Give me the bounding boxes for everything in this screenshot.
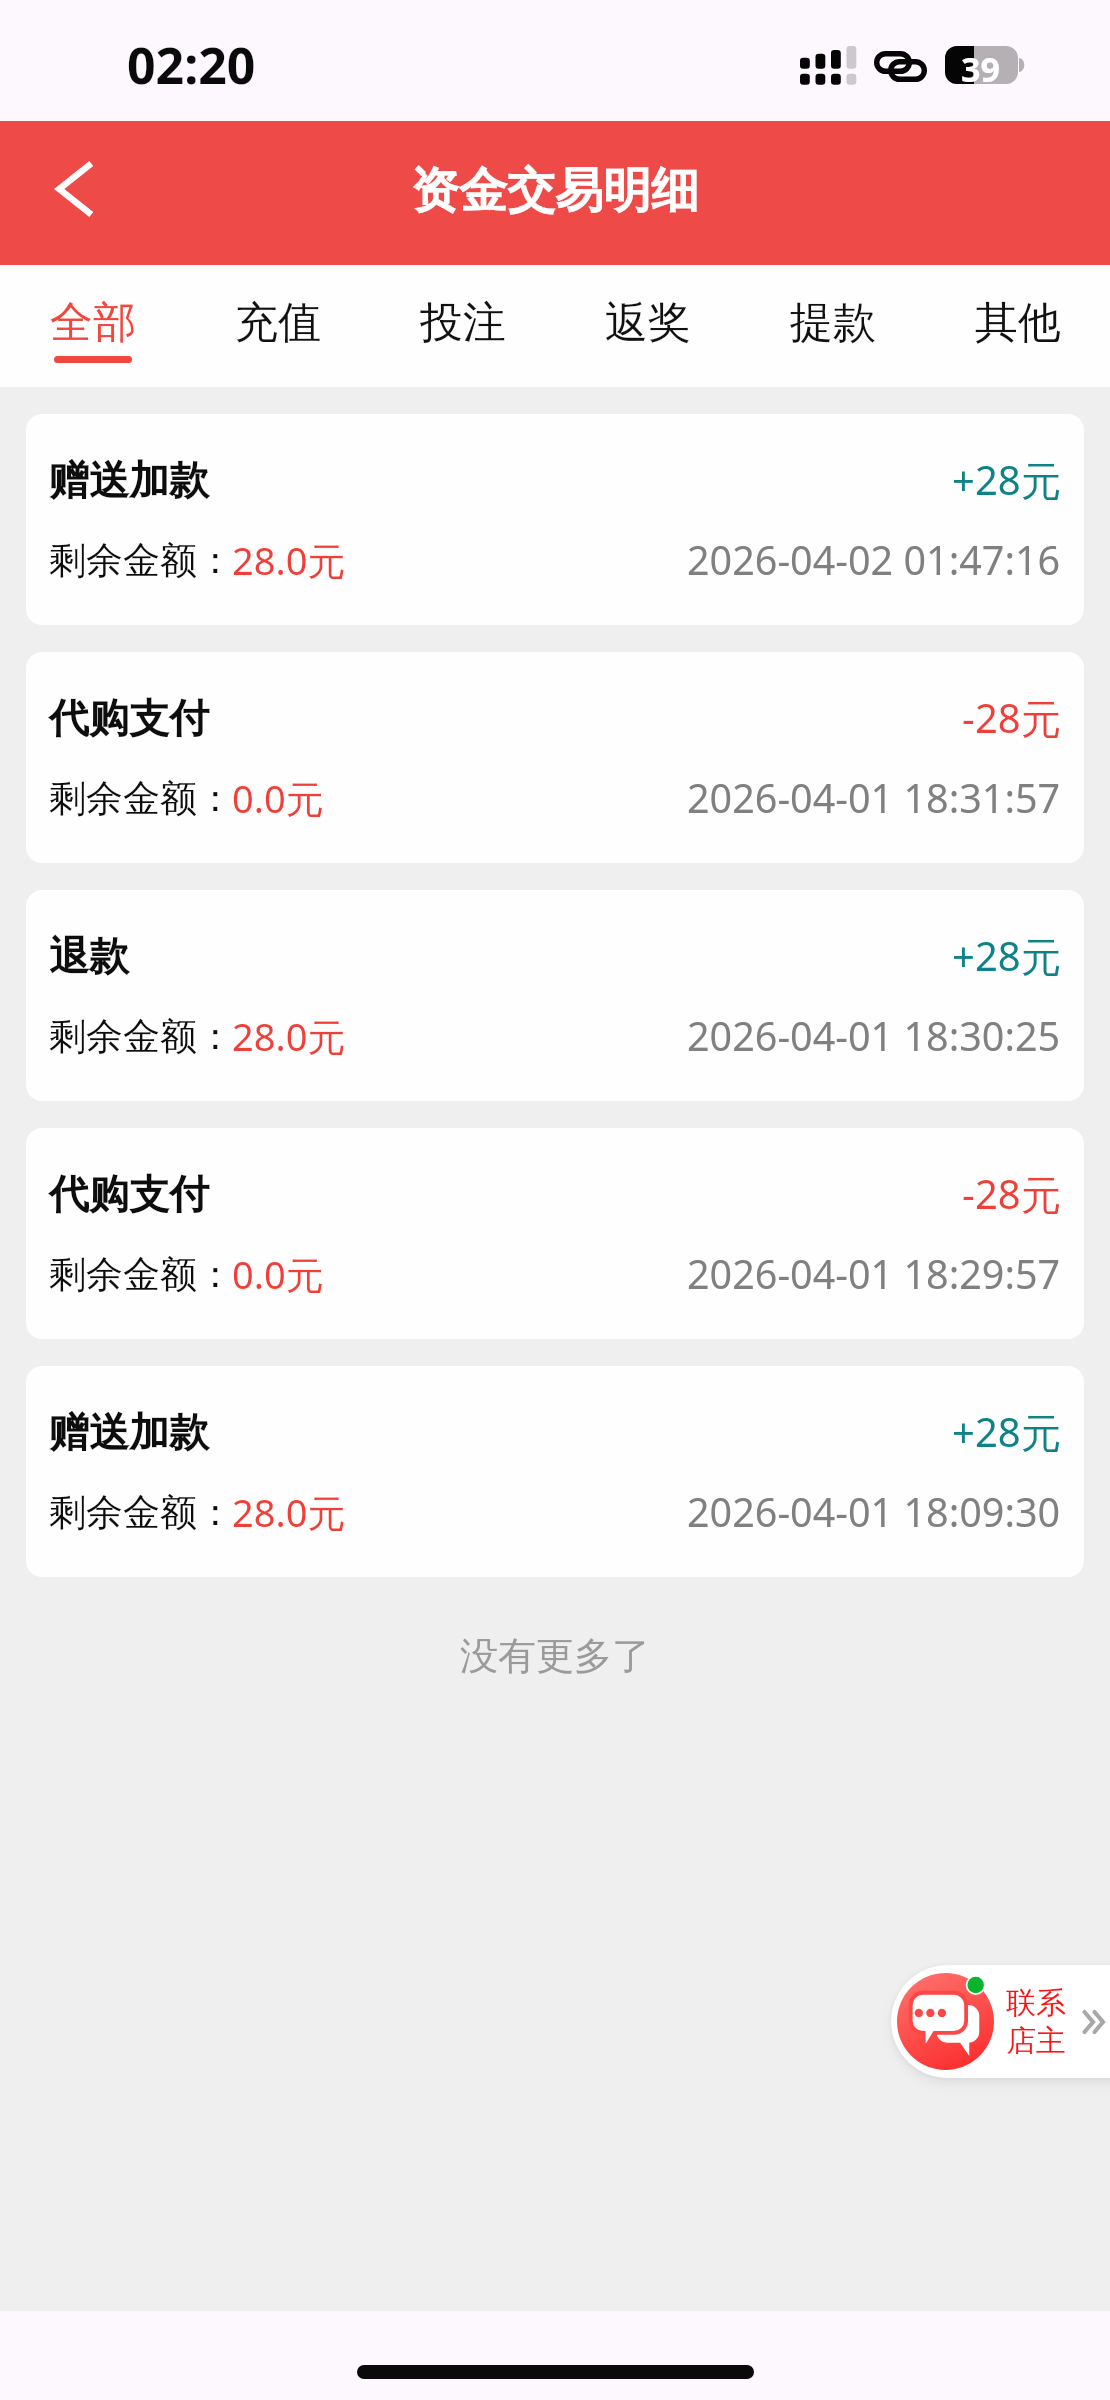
button[interactable]: 联系店主 (891, 1965, 1110, 2078)
staticText: 28.0元 (232, 1010, 346, 1062)
button[interactable]: 其他 (925, 265, 1110, 387)
button[interactable]: 全部 (0, 265, 185, 387)
staticText: 返奖 (605, 296, 691, 350)
button[interactable]: 返奖 (555, 265, 740, 387)
staticText: 投注 (420, 296, 506, 350)
staticText: +28元 (952, 1404, 1061, 1459)
staticText: 39 (958, 46, 1003, 86)
staticText: 联系 (1006, 1984, 1066, 2022)
staticText: 剩余金额： (49, 537, 234, 584)
button[interactable]: 赠送加款 (26, 414, 1084, 625)
staticText: -28元 (962, 690, 1061, 745)
staticText: 剩余金额： (49, 1251, 234, 1298)
staticText: 28.0元 (232, 1486, 346, 1538)
button[interactable]: 代购支付 (26, 652, 1084, 863)
staticText: 2026-04-02 01:47:16 (687, 533, 1061, 587)
button[interactable]: 提款 (740, 265, 925, 387)
staticText: 没有更多了 (0, 1632, 1110, 1680)
staticText: 2026-04-01 18:31:57 (687, 771, 1061, 825)
staticText: 其他 (975, 296, 1061, 350)
button[interactable]: 代购支付 (26, 1128, 1084, 1339)
staticText: 剩余金额： (49, 1013, 234, 1060)
staticText: 退款 (49, 931, 129, 981)
staticText: 02:20 (127, 31, 256, 99)
button[interactable]: 投注 (370, 265, 555, 387)
staticText: -28元 (962, 1166, 1061, 1221)
button[interactable]: 赠送加款 (26, 1366, 1084, 1577)
staticText: 2026-04-01 18:30:25 (687, 1009, 1061, 1063)
staticText: 2026-04-01 18:09:30 (687, 1485, 1061, 1539)
staticText: 0.0元 (232, 1248, 324, 1300)
staticText: 资金交易明细 (411, 161, 699, 221)
staticText: 赠送加款 (49, 455, 209, 505)
staticText: 充值 (235, 296, 321, 350)
staticText: 代购支付 (49, 1169, 209, 1219)
button[interactable]: 退款 (26, 890, 1084, 1101)
button[interactable]: 充值 (185, 265, 370, 387)
staticText: 店主 (1006, 2022, 1066, 2060)
staticText: +28元 (952, 928, 1061, 983)
staticText: 提款 (790, 296, 876, 350)
staticText: 0.0元 (232, 772, 324, 824)
staticText: +28元 (952, 452, 1061, 507)
button[interactable]: Back (0, 121, 145, 265)
staticText: 全部 (50, 296, 136, 350)
staticText: 剩余金额： (49, 1489, 234, 1536)
staticText: 28.0元 (232, 534, 346, 586)
staticText: 剩余金额： (49, 775, 234, 822)
staticText: 代购支付 (49, 693, 209, 743)
staticText: 赠送加款 (49, 1407, 209, 1457)
staticText: 2026-04-01 18:29:57 (687, 1247, 1061, 1301)
